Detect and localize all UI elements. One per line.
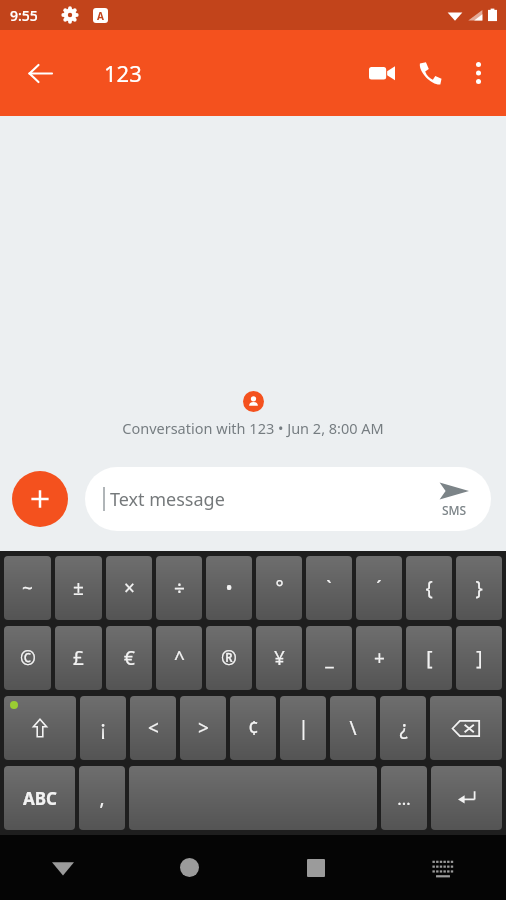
button[interactable]: ¡ bbox=[80, 696, 126, 760]
staticText: • bbox=[225, 575, 233, 601]
button[interactable]: < bbox=[130, 696, 176, 760]
staticText: € bbox=[124, 645, 135, 671]
button[interactable]: + bbox=[356, 626, 402, 690]
staticText: ¥ bbox=[274, 645, 285, 671]
button[interactable]: Hide keyboard bbox=[0, 835, 126, 900]
staticText: ¿ bbox=[399, 715, 408, 741]
staticText: { bbox=[425, 575, 433, 601]
button[interactable]: ± bbox=[55, 556, 102, 620]
button[interactable]: • bbox=[206, 556, 252, 620]
staticText: + bbox=[374, 645, 385, 671]
button[interactable]: Send SMS bbox=[437, 479, 471, 520]
staticText: [ bbox=[426, 645, 433, 671]
staticText: © bbox=[20, 645, 36, 671]
staticText: 9:55 bbox=[10, 6, 38, 25]
staticText: Conversation with 123 • Jun 2, 8:00 AM bbox=[122, 418, 384, 438]
button[interactable]: ~ bbox=[4, 556, 51, 620]
staticText: , bbox=[99, 785, 105, 811]
button[interactable]: _ bbox=[306, 626, 352, 690]
staticText: ° bbox=[275, 575, 284, 601]
staticText: _ bbox=[325, 645, 334, 671]
button[interactable]: … bbox=[381, 766, 427, 830]
button[interactable]: ` bbox=[306, 556, 352, 620]
button[interactable]: ÷ bbox=[156, 556, 202, 620]
button[interactable]: ABC bbox=[4, 766, 75, 830]
button[interactable]: \ bbox=[330, 696, 376, 760]
staticText: } bbox=[475, 575, 483, 601]
staticText: Text message bbox=[110, 487, 225, 512]
button[interactable]: Call bbox=[406, 49, 454, 97]
button[interactable]: } bbox=[456, 556, 502, 620]
button[interactable]: [ bbox=[406, 626, 452, 690]
button[interactable]: Home bbox=[126, 835, 252, 900]
button[interactable]: , bbox=[79, 766, 125, 830]
staticText: ± bbox=[73, 575, 84, 601]
button[interactable]: | bbox=[280, 696, 326, 760]
staticText: ÷ bbox=[174, 575, 185, 601]
staticText: … bbox=[397, 787, 411, 810]
staticText: 123 bbox=[104, 58, 142, 88]
button[interactable]: ´ bbox=[356, 556, 402, 620]
staticText: ¡ bbox=[100, 715, 106, 741]
staticText: ` bbox=[326, 575, 332, 601]
staticText: ~ bbox=[22, 575, 33, 601]
button[interactable]: ¥ bbox=[256, 626, 302, 690]
button[interactable]: £ bbox=[55, 626, 102, 690]
button[interactable]: ° bbox=[256, 556, 302, 620]
button[interactable]: ® bbox=[206, 626, 252, 690]
staticText: A bbox=[97, 9, 104, 23]
button[interactable]: Back bbox=[16, 49, 64, 97]
staticText: < bbox=[148, 715, 159, 741]
staticText: ^ bbox=[174, 645, 185, 671]
button[interactable]: € bbox=[106, 626, 152, 690]
button[interactable]: Video call bbox=[358, 49, 406, 97]
button[interactable]: Enter bbox=[431, 766, 502, 830]
staticText: SMS bbox=[442, 502, 467, 518]
staticText: ´ bbox=[376, 575, 382, 601]
staticText: \ bbox=[349, 715, 357, 741]
button[interactable]: × bbox=[106, 556, 152, 620]
staticText: × bbox=[124, 575, 135, 601]
button[interactable]: Recent apps bbox=[252, 835, 379, 900]
staticText: ABC bbox=[23, 787, 57, 810]
staticText: | bbox=[298, 715, 309, 741]
button[interactable]: space bbox=[129, 766, 377, 830]
button[interactable]: Text message bbox=[85, 467, 491, 531]
button[interactable]: Switch keyboard bbox=[379, 835, 506, 900]
button[interactable]: More options bbox=[454, 49, 502, 97]
button[interactable]: ] bbox=[456, 626, 502, 690]
button[interactable]: ^ bbox=[156, 626, 202, 690]
button[interactable]: Shift bbox=[4, 696, 76, 760]
button[interactable]: ¢ bbox=[230, 696, 276, 760]
button[interactable]: Attach bbox=[12, 471, 68, 527]
button[interactable]: > bbox=[180, 696, 226, 760]
button[interactable]: Backspace bbox=[430, 696, 502, 760]
button[interactable]: { bbox=[406, 556, 452, 620]
staticText: £ bbox=[73, 645, 84, 671]
staticText: ® bbox=[221, 645, 237, 671]
button[interactable]: © bbox=[4, 626, 51, 690]
staticText: > bbox=[198, 715, 209, 741]
staticText: ¢ bbox=[248, 715, 259, 741]
button[interactable]: ¿ bbox=[380, 696, 426, 760]
staticText: ] bbox=[476, 645, 483, 671]
